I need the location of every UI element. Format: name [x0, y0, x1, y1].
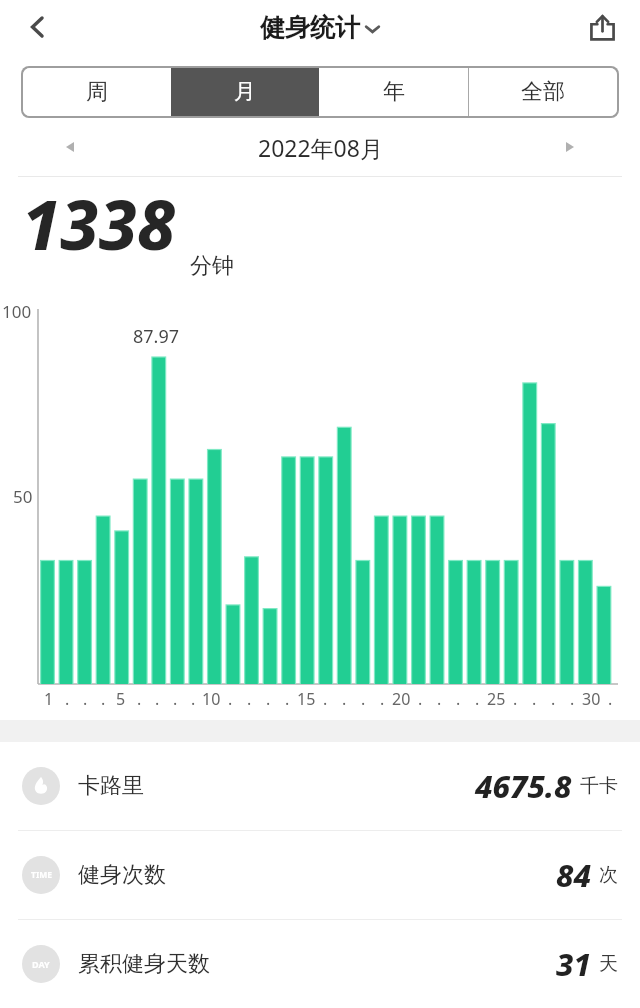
staticText: . [285, 688, 290, 710]
button[interactable]: 周 [23, 68, 171, 116]
button[interactable]: 全部 [468, 68, 617, 116]
staticText: . [475, 688, 480, 710]
staticText: 周 [86, 78, 108, 106]
staticText: 50 [13, 485, 33, 508]
button[interactable]: Share [578, 3, 626, 51]
staticText: 卡路里 [78, 772, 144, 800]
staticText: DAY [32, 958, 50, 970]
staticText: 全部 [521, 78, 565, 106]
button[interactable]: 月 [171, 68, 319, 116]
staticText: 5 [116, 688, 126, 710]
button[interactable]: Next month [550, 127, 590, 167]
staticText: 天 [599, 952, 618, 976]
staticText: . [361, 688, 366, 710]
staticText: . [513, 688, 518, 710]
staticText: . [228, 688, 233, 710]
staticText: . [418, 688, 423, 710]
staticText: 25 [487, 688, 506, 710]
staticText: . [137, 688, 142, 710]
staticText: 月 [234, 78, 256, 106]
staticText: 累积健身天数 [78, 950, 210, 978]
staticText: . [380, 688, 385, 710]
staticText: . [342, 688, 347, 710]
staticText: 20 [392, 688, 411, 710]
staticText: . [83, 688, 88, 710]
staticText: . [532, 688, 537, 710]
staticText: . [101, 688, 106, 710]
staticText: 1 [44, 688, 54, 710]
staticText: . [570, 688, 575, 710]
button[interactable]: 健身统计 [260, 12, 380, 43]
staticText: 87.97 [133, 324, 180, 349]
staticText: 次 [599, 863, 618, 887]
staticText: . [247, 688, 252, 710]
button[interactable]: Back [12, 2, 62, 52]
staticText: 30 [582, 688, 601, 710]
staticText: 年 [383, 78, 405, 106]
button[interactable]: DAY [0, 920, 640, 1008]
staticText: . [191, 688, 196, 710]
staticText: . [551, 688, 556, 710]
button[interactable]: 年 [319, 68, 468, 116]
staticText: . [173, 688, 178, 710]
button[interactable]: Previous month [50, 127, 90, 167]
staticText: . [608, 688, 613, 710]
staticText: 健身次数 [78, 861, 166, 889]
staticText: 2022年08月 [258, 132, 383, 163]
staticText: 健身统计 [260, 12, 360, 43]
staticText: 15 [297, 688, 316, 710]
staticText: . [437, 688, 442, 710]
staticText: . [266, 688, 271, 710]
button[interactable]: 卡路里 [0, 742, 640, 830]
staticText: . [65, 688, 70, 710]
staticText: 100 [2, 300, 32, 323]
staticText: 4675.8 [475, 765, 572, 807]
staticText: 84 [556, 854, 591, 896]
staticText: . [155, 688, 160, 710]
staticText: 千卡 [580, 774, 618, 798]
staticText: 10 [202, 688, 221, 710]
staticText: . [456, 688, 461, 710]
staticText: . [323, 688, 328, 710]
staticText: TIME [31, 869, 52, 881]
staticText: 31 [556, 943, 591, 985]
button[interactable]: TIME [0, 831, 640, 919]
staticText: 分钟 [190, 252, 234, 280]
staticText: 1338 [22, 177, 176, 268]
